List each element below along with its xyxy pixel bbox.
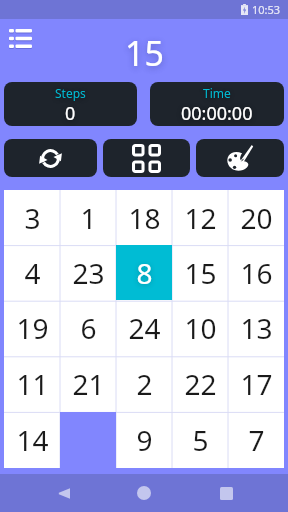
button[interactable]: 21 [60, 356, 116, 412]
staticText: 7 [248, 421, 265, 459]
button[interactable]: 6 [60, 300, 116, 356]
button[interactable]: Home [125, 474, 163, 512]
button[interactable]: 24 [116, 300, 172, 356]
staticText: 15 [184, 254, 217, 292]
button[interactable]: 18 [116, 190, 172, 245]
staticText: 19 [16, 309, 49, 347]
button[interactable]: Menu [9, 29, 32, 48]
button[interactable]: 5 [172, 412, 228, 468]
staticText: 14 [16, 421, 49, 459]
staticText: 20 [240, 199, 273, 237]
staticText: 1 [80, 199, 97, 237]
button[interactable]: 7 [228, 412, 284, 468]
staticText: Time [203, 85, 231, 101]
button[interactable]: 15 [172, 245, 228, 300]
button[interactable]: 8 [116, 245, 172, 300]
button[interactable]: Back [44, 474, 82, 512]
button[interactable]: Grid size [103, 139, 190, 177]
staticText: 22 [184, 365, 217, 403]
staticText: 11 [16, 365, 49, 403]
staticText: 15 [125, 30, 164, 76]
staticText: 12 [184, 199, 217, 237]
button[interactable]: Restart [4, 139, 97, 177]
button[interactable]: 12 [172, 190, 228, 245]
staticText: 9 [136, 421, 153, 459]
button[interactable]: 20 [228, 190, 284, 245]
button[interactable]: 3 [4, 190, 60, 245]
button[interactable]: 2 [116, 356, 172, 412]
button[interactable]: 1 [60, 190, 116, 245]
staticText: 17 [240, 365, 273, 403]
staticText: 2 [136, 365, 153, 403]
staticText: 00:00:00 [181, 101, 253, 126]
staticText: 13 [240, 309, 273, 347]
button[interactable]: 19 [4, 300, 60, 356]
staticText: 10:53 [252, 2, 281, 17]
button[interactable]: Time [150, 82, 284, 126]
button[interactable]: 10 [172, 300, 228, 356]
staticText: 21 [72, 365, 105, 403]
button[interactable]: 9 [116, 412, 172, 468]
staticText: Steps [55, 85, 86, 101]
button[interactable]: Theme [196, 139, 284, 177]
button[interactable]: 13 [228, 300, 284, 356]
button[interactable]: Recents [207, 474, 245, 512]
button[interactable]: 23 [60, 245, 116, 300]
staticText: 23 [72, 254, 105, 292]
button[interactable]: 4 [4, 245, 60, 300]
staticText: 16 [240, 254, 273, 292]
button[interactable]: 11 [4, 356, 60, 412]
staticText: 5 [192, 421, 209, 459]
staticText: 0 [65, 101, 76, 126]
button[interactable]: 22 [172, 356, 228, 412]
button[interactable]: Steps [4, 82, 137, 126]
button[interactable]: 14 [4, 412, 60, 468]
staticText: 18 [128, 199, 161, 237]
staticText: 3 [24, 199, 41, 237]
button[interactable]: 17 [228, 356, 284, 412]
staticText: 4 [24, 254, 41, 292]
staticText: 10 [184, 309, 217, 347]
staticText: 8 [136, 254, 153, 292]
button[interactable]: 16 [228, 245, 284, 300]
staticText: 6 [80, 309, 97, 347]
staticText: 24 [128, 309, 161, 347]
